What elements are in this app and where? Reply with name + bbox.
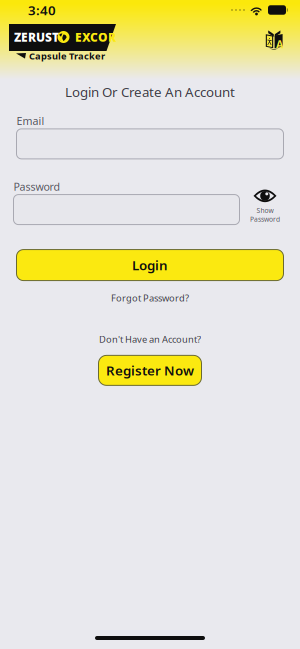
staticText: A [276, 37, 283, 51]
button[interactable]: Show Password [239, 174, 286, 225]
staticText: Capsule Tracker [29, 50, 105, 62]
staticText: Password [13, 179, 60, 194]
staticText: 3:40 [28, 1, 56, 19]
button[interactable]: Translate language [265, 24, 284, 52]
button[interactable]: Forgot Password? [103, 288, 197, 308]
staticText: Password [250, 215, 280, 224]
button[interactable]: Login [16, 250, 283, 281]
staticText: ZERUST [14, 29, 59, 45]
staticText: Login Or Create An Account [65, 83, 235, 101]
staticText: Don't Have an Account? [99, 333, 201, 345]
staticText: Email [16, 114, 44, 128]
staticText: Forgot Password? [111, 292, 189, 304]
button[interactable]: Register Now [98, 355, 201, 385]
staticText: Login [132, 256, 168, 274]
staticText: Show [256, 206, 273, 215]
staticText: Register Now [106, 361, 194, 379]
staticText: EXCOR [75, 29, 116, 45]
